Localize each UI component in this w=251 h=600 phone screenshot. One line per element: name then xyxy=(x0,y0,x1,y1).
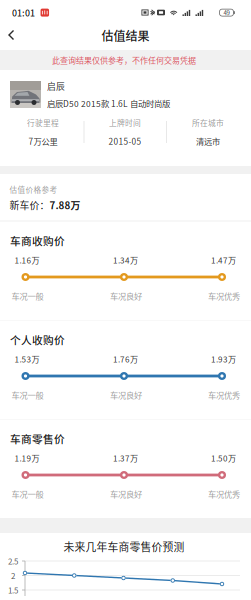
staticText: 上牌时间 xyxy=(109,117,141,128)
staticText: 启辰D50 2015款 1.6L 自动时尚版 xyxy=(47,97,170,109)
staticText: 车况一般 xyxy=(11,488,43,500)
staticText: 估值价格参考 xyxy=(9,184,57,195)
staticText: 车况优秀 xyxy=(208,389,240,401)
staticText: 01:01 xyxy=(12,6,35,19)
staticText: 2.5 xyxy=(8,555,18,567)
staticText: 车况良好 xyxy=(110,290,142,302)
staticText: 所在城市 xyxy=(192,117,224,128)
staticText: 2 xyxy=(11,570,15,581)
staticText: 估值结果 xyxy=(101,27,149,44)
staticText: 车况优秀 xyxy=(208,290,240,302)
staticText: 车况一般 xyxy=(11,290,43,302)
staticText: 1.5 xyxy=(8,584,18,596)
staticText: 1.37万 xyxy=(113,452,138,464)
staticText: 新车价： xyxy=(9,198,49,212)
staticText: 1.47万 xyxy=(211,254,236,266)
staticText: 7万公里 xyxy=(28,135,57,147)
button[interactable]: 返回 xyxy=(1,22,27,48)
staticText: 车况一般 xyxy=(11,389,43,401)
staticText: 1.19万 xyxy=(14,452,39,464)
staticText: 车商零售价 xyxy=(10,431,65,446)
staticText: 1.76万 xyxy=(113,353,138,365)
staticText: 个人收购价 xyxy=(10,332,65,347)
staticText: 7.88万 xyxy=(49,198,80,212)
staticText: 49 xyxy=(223,8,229,17)
staticText: 1.93万 xyxy=(211,353,236,365)
staticText: 1.16万 xyxy=(14,254,39,266)
staticText: 启辰 xyxy=(47,79,65,92)
staticText: 车况良好 xyxy=(110,389,142,401)
staticText: 1.34万 xyxy=(113,254,138,266)
staticText: 2015-05 xyxy=(108,135,141,147)
staticText: 车商收购价 xyxy=(10,233,65,248)
staticText: 清远市 xyxy=(196,135,220,147)
staticText: 车况良好 xyxy=(110,488,142,500)
staticText: 未来几年车商零售价预测 xyxy=(63,539,184,554)
staticText: 行驶里程 xyxy=(27,117,59,128)
staticText: 车况优秀 xyxy=(208,488,240,500)
staticText: 1.53万 xyxy=(14,353,39,365)
staticText: 此查询结果仅供参考，不作任何交易凭据 xyxy=(52,54,196,66)
staticText: 1.50万 xyxy=(211,452,236,464)
